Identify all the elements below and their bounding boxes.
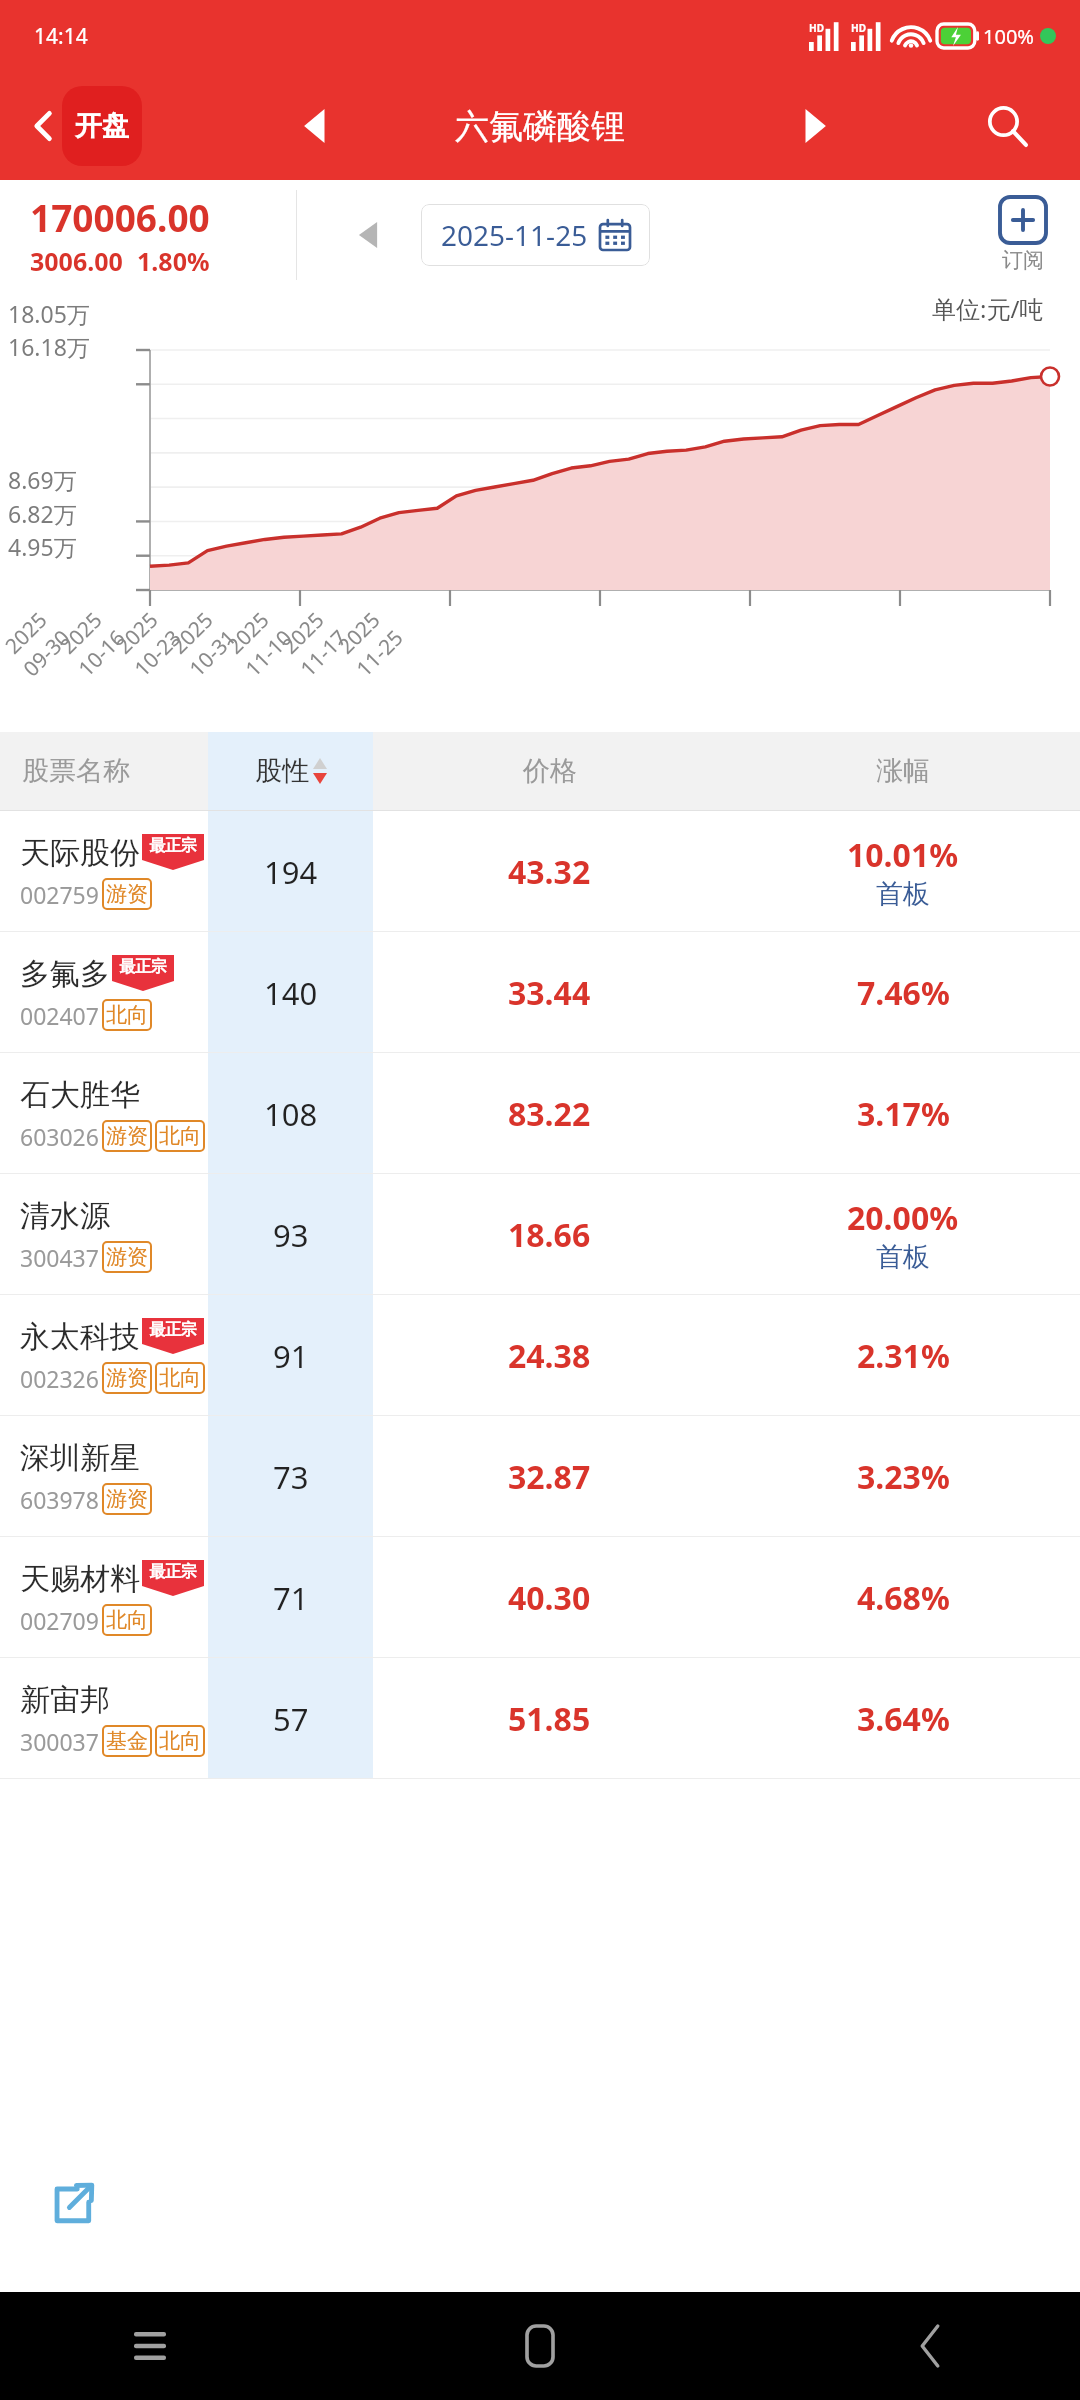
staticText: 永太科技	[20, 1318, 140, 1356]
button[interactable]: Recent apps	[110, 2306, 190, 2386]
staticText: 基金	[106, 1728, 148, 1754]
staticText: 20.00%	[847, 1196, 959, 1240]
staticText: 北向	[159, 1728, 201, 1754]
staticText: HD	[851, 21, 866, 35]
staticText: 10.01%	[847, 833, 959, 877]
button[interactable]: 清水源	[0, 1174, 1080, 1295]
staticText: 10-16	[72, 624, 131, 683]
staticText: 开盘	[75, 109, 129, 143]
button[interactable]: 深圳新星	[0, 1416, 1080, 1537]
button[interactable]: 石大胜华	[0, 1053, 1080, 1174]
staticText: 91	[273, 1335, 309, 1377]
staticText: 3006.00	[30, 244, 123, 278]
button[interactable]: Share	[30, 2162, 114, 2246]
staticText: 最正宗	[149, 1562, 197, 1582]
staticText: 11-17	[294, 624, 353, 683]
button[interactable]: Back	[12, 94, 76, 158]
staticText: 4.68%	[857, 1576, 950, 1620]
button[interactable]: 新宙邦	[0, 1658, 1080, 1779]
staticText: 603978	[20, 1484, 99, 1515]
staticText: 最正宗	[119, 957, 167, 977]
button[interactable]: 永太科技	[0, 1295, 1080, 1416]
staticText: 3.23%	[857, 1455, 950, 1499]
staticText: 2025	[332, 605, 387, 660]
staticText: 3.17%	[857, 1092, 950, 1136]
button[interactable]: 股票名称	[0, 732, 208, 810]
staticText: 170006.00	[30, 192, 210, 242]
staticText: 300437	[20, 1242, 99, 1273]
staticText: 2025-11-25	[441, 216, 588, 254]
button[interactable]: 天赐材料	[0, 1537, 1080, 1658]
staticText: 32.87	[508, 1455, 591, 1499]
staticText: 194	[264, 851, 318, 893]
staticText: 2025	[0, 605, 54, 660]
staticText: 涨幅	[876, 754, 930, 788]
staticText: 57	[273, 1698, 309, 1740]
staticText: 六氟磷酸锂	[455, 105, 625, 148]
staticText: 北向	[106, 1607, 148, 1633]
staticText: 清水源	[20, 1197, 110, 1235]
staticText: 石大胜华	[20, 1076, 140, 1114]
staticText: 73	[273, 1456, 309, 1498]
staticText: 深圳新星	[20, 1439, 140, 1477]
staticText: 价格	[523, 754, 577, 788]
staticText: 002407	[20, 1000, 99, 1031]
staticText: 14:14	[34, 22, 88, 51]
staticText: 10-23	[128, 624, 187, 683]
staticText: 002709	[20, 1605, 99, 1636]
staticText: 300037	[20, 1726, 99, 1757]
button[interactable]: 订阅	[1000, 197, 1046, 273]
staticText: 83.22	[508, 1092, 591, 1136]
staticText: 北向	[159, 1365, 201, 1391]
staticText: 订阅	[1002, 247, 1044, 273]
button[interactable]: 多氟多	[0, 932, 1080, 1053]
staticText: 2025	[110, 605, 165, 660]
staticText: 单位:元/吨	[932, 292, 1044, 325]
staticText: 股性	[255, 754, 309, 788]
staticText: 8.69万	[8, 464, 77, 495]
staticText: 10-31	[183, 624, 242, 683]
staticText: 新宙邦	[20, 1681, 110, 1719]
staticText: 天赐材料	[20, 1560, 140, 1598]
staticText: 2025	[276, 605, 331, 660]
staticText: 140	[264, 972, 318, 1014]
staticText: 108	[264, 1093, 318, 1135]
staticText: 4.95万	[8, 531, 77, 562]
button[interactable]: Search	[970, 89, 1044, 163]
button[interactable]: Previous day	[343, 210, 393, 260]
button[interactable]: 天际股份	[0, 811, 1080, 932]
button[interactable]: 2025-11-25	[421, 204, 650, 266]
staticText: 40.30	[508, 1576, 591, 1620]
staticText: 93	[273, 1214, 309, 1256]
staticText: 北向	[106, 1002, 148, 1028]
staticText: 2.31%	[857, 1334, 950, 1378]
button[interactable]: Back	[890, 2306, 970, 2386]
button[interactable]: 开盘	[62, 86, 142, 166]
button[interactable]: 股性	[208, 732, 373, 810]
staticText: 2025	[54, 605, 109, 660]
staticText: 游资	[106, 1365, 148, 1391]
staticText: 天际股份	[20, 834, 140, 872]
staticText: 2025	[165, 605, 220, 660]
staticText: 18.66	[508, 1213, 591, 1257]
button[interactable]: Previous	[280, 90, 352, 162]
staticText: 2025	[221, 605, 276, 660]
staticText: 北向	[159, 1123, 201, 1149]
staticText: 首板	[876, 877, 930, 911]
button[interactable]: Home	[500, 2306, 580, 2386]
button[interactable]: 价格	[373, 732, 726, 810]
staticText: 3.64%	[857, 1697, 950, 1741]
staticText: 6.82万	[8, 498, 77, 529]
staticText: 11-10	[239, 624, 298, 683]
staticText: 33.44	[508, 971, 591, 1015]
staticText: 游资	[106, 1123, 148, 1149]
button[interactable]: 涨幅	[726, 732, 1080, 810]
button[interactable]: Next	[778, 90, 850, 162]
staticText: 002759	[20, 879, 99, 910]
staticText: 603026	[20, 1121, 99, 1152]
staticText: 11-25	[350, 624, 409, 683]
staticText: 51.85	[508, 1697, 591, 1741]
staticText: 002326	[20, 1363, 99, 1394]
staticText: 游资	[106, 1486, 148, 1512]
staticText: 43.32	[508, 850, 591, 894]
